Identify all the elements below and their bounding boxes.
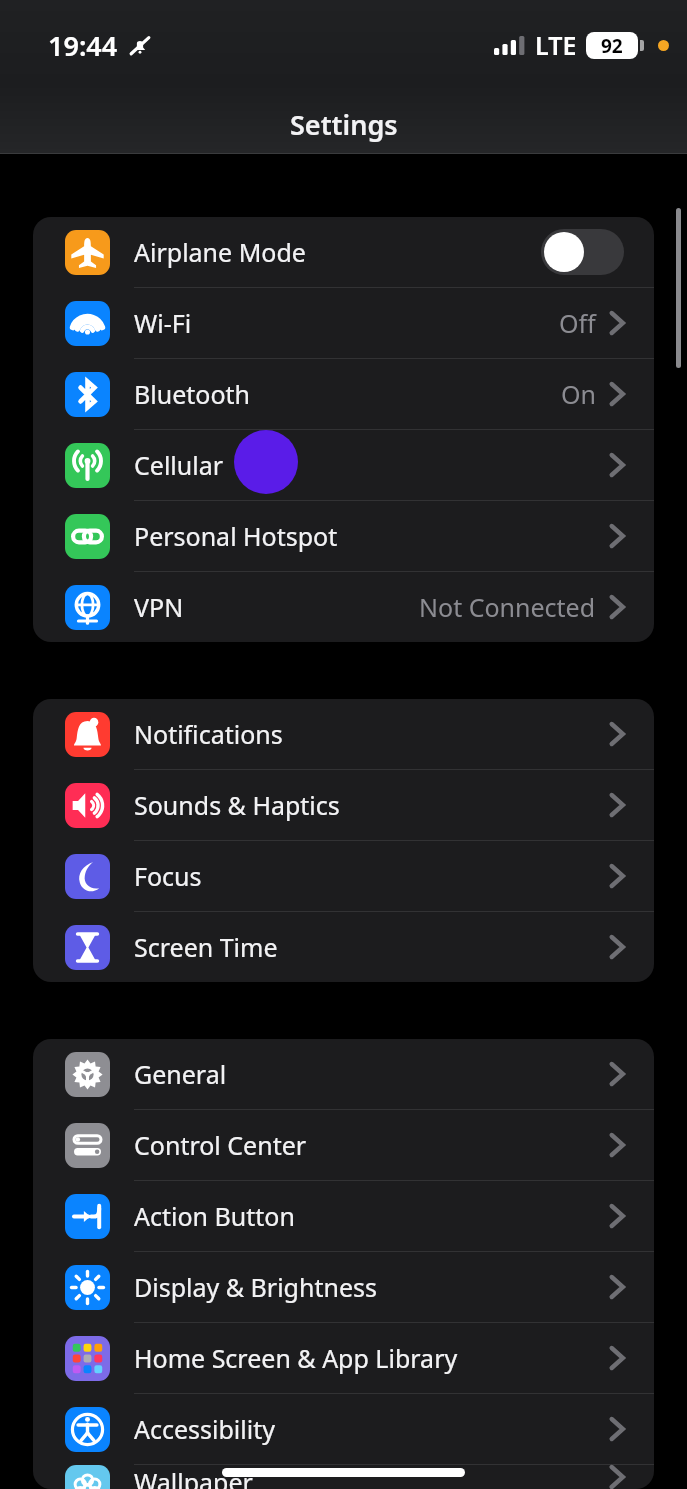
button[interactable]: Home Screen & App Library xyxy=(33,1323,654,1393)
staticText: Off xyxy=(559,306,596,340)
staticText: 92 xyxy=(601,33,623,59)
button[interactable]: Notifications xyxy=(33,699,654,769)
staticText: On xyxy=(561,377,596,411)
button[interactable]: General xyxy=(33,1039,654,1109)
staticText: Wi-Fi xyxy=(134,306,192,340)
button[interactable]: Wallpaper xyxy=(33,1465,654,1489)
staticText: VPN xyxy=(134,590,184,624)
staticText: Wallpaper xyxy=(134,1465,253,1489)
staticText: Accessibility xyxy=(134,1412,275,1446)
staticText: Airplane Mode xyxy=(134,235,306,269)
button[interactable]: Action Button xyxy=(33,1181,654,1251)
staticText: Display & Brightness xyxy=(134,1270,377,1304)
button[interactable]: Personal Hotspot xyxy=(33,501,654,571)
button[interactable]: Focus xyxy=(33,841,654,911)
button[interactable]: Cellular xyxy=(33,430,654,500)
button[interactable]: Screen Time xyxy=(33,912,654,982)
button[interactable]: Airplane Mode toggle, off xyxy=(541,229,624,275)
staticText: Home Screen & App Library xyxy=(134,1341,458,1375)
staticText: Control Center xyxy=(134,1128,307,1162)
button[interactable]: Sounds & Haptics xyxy=(33,770,654,840)
staticText: Notifications xyxy=(134,717,283,751)
staticText: 19:44 xyxy=(48,27,118,64)
button[interactable]: Bluetooth xyxy=(33,359,654,429)
button[interactable]: VPN xyxy=(33,572,654,642)
staticText: Personal Hotspot xyxy=(134,519,338,553)
button[interactable]: Control Center xyxy=(33,1110,654,1180)
button[interactable]: Accessibility xyxy=(33,1394,654,1464)
staticText: Screen Time xyxy=(134,930,278,964)
button[interactable]: Wi-Fi xyxy=(33,288,654,358)
staticText: LTE xyxy=(535,28,577,62)
staticText: Settings xyxy=(290,106,398,143)
button[interactable]: Display & Brightness xyxy=(33,1252,654,1322)
staticText: Bluetooth xyxy=(134,377,251,411)
staticText: General xyxy=(134,1057,227,1091)
staticText: Not Connected xyxy=(419,590,596,624)
staticText: Action Button xyxy=(134,1199,295,1233)
staticText: Focus xyxy=(134,859,202,893)
button[interactable]: Airplane Mode xyxy=(33,217,654,287)
staticText: Cellular xyxy=(134,448,224,482)
staticText: Sounds & Haptics xyxy=(134,788,340,822)
